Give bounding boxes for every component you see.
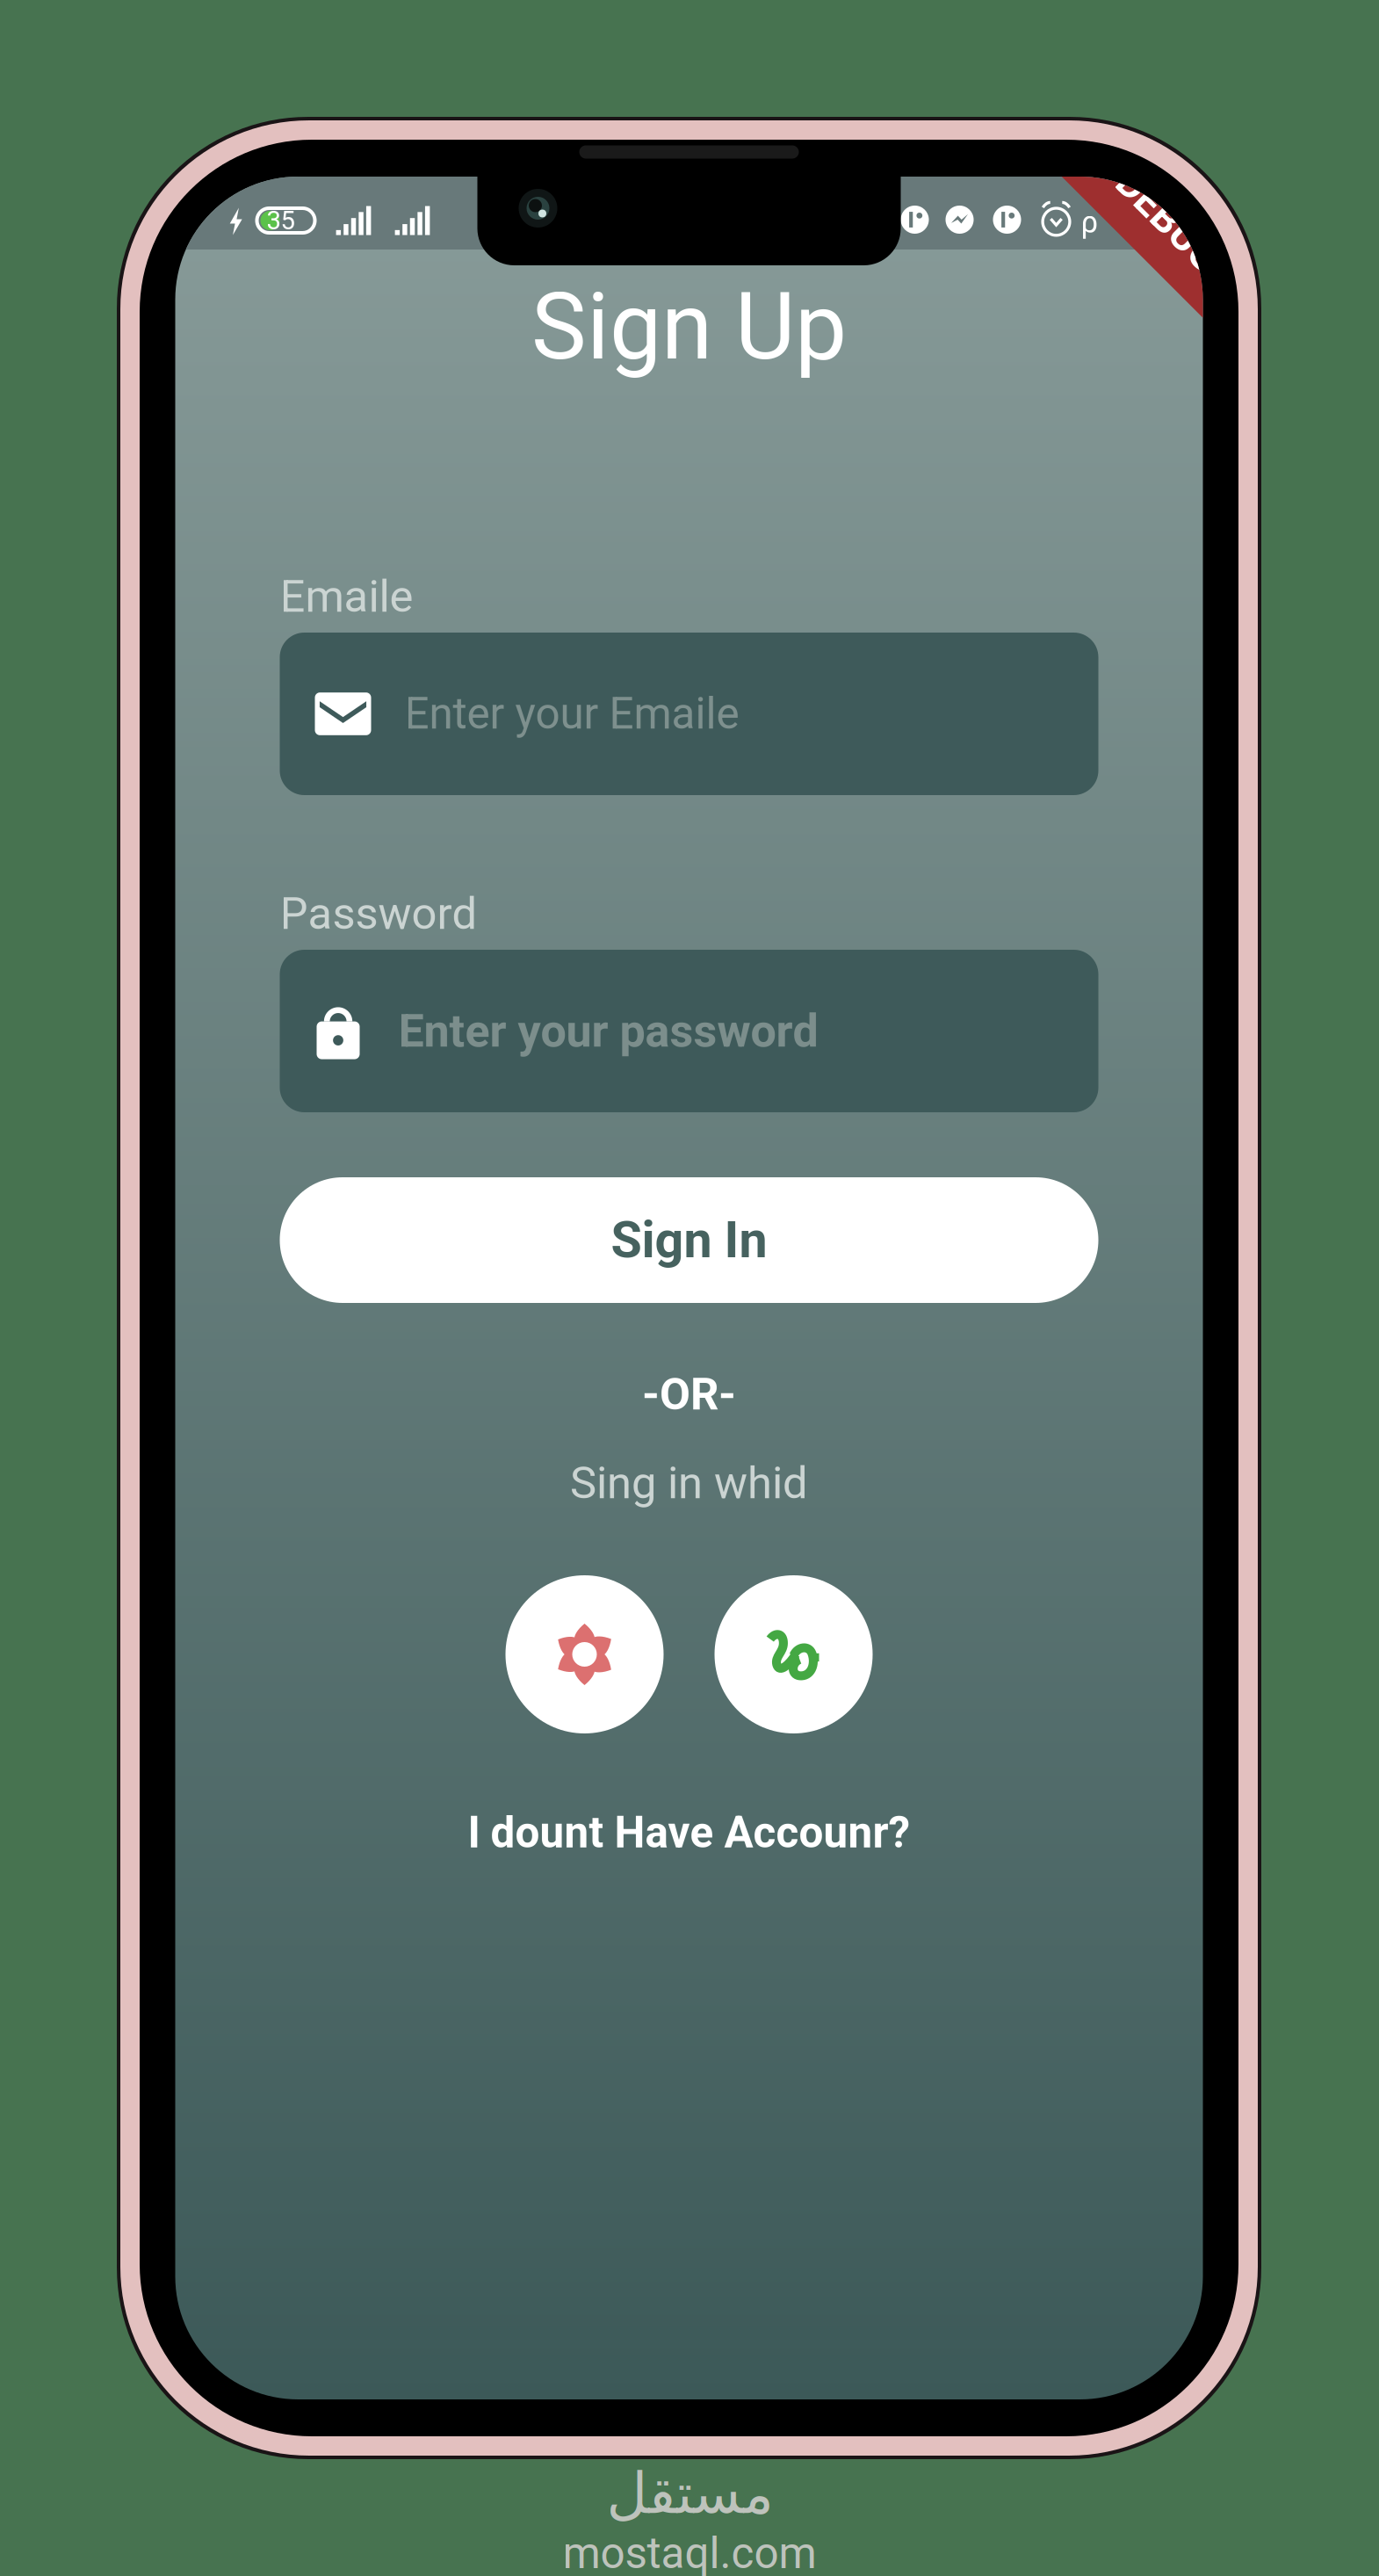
staticText: DEBUG bbox=[1106, 194, 1233, 240]
button[interactable]: Enter your password bbox=[280, 950, 1098, 1112]
button[interactable]: Enter your Emaile bbox=[280, 633, 1098, 795]
staticText: Emaile bbox=[280, 570, 413, 623]
button[interactable]: Sign in with Flickr bbox=[505, 1575, 664, 1733]
staticText: Enter your Emaile bbox=[404, 688, 739, 739]
staticText: mostaql.com bbox=[563, 2528, 816, 2576]
staticText: مستقل bbox=[606, 2461, 773, 2526]
button[interactable]: Sign in with Line bbox=[715, 1575, 873, 1733]
button[interactable]: I dount Have Accounr? bbox=[468, 1804, 910, 1862]
staticText: Sign Up bbox=[531, 273, 847, 381]
staticText: Password bbox=[280, 888, 477, 940]
staticText: Sign In bbox=[611, 1211, 767, 1270]
staticText: 35 bbox=[267, 205, 295, 236]
staticText: I dount Have Accounr? bbox=[468, 1807, 910, 1858]
button[interactable]: Sign In bbox=[280, 1177, 1098, 1303]
staticText: -OR- bbox=[642, 1368, 736, 1420]
staticText: Sing in whid bbox=[570, 1457, 808, 1509]
staticText: Enter your password bbox=[398, 1004, 818, 1058]
staticText: ρ bbox=[1081, 204, 1098, 240]
